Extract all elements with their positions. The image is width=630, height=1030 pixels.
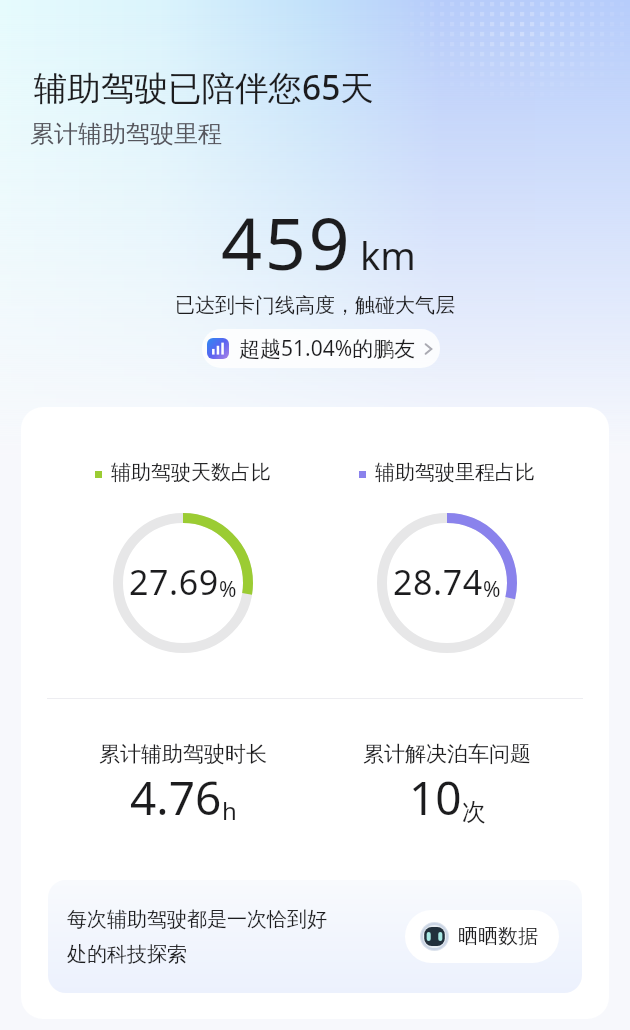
button[interactable]: 晒晒数据	[405, 910, 559, 963]
staticText: 459	[221, 193, 353, 291]
staticText: %	[483, 575, 501, 604]
staticText: 辅助驾驶已陪伴您65天	[34, 64, 374, 110]
button[interactable]: 超越51.04%的鹏友	[202, 329, 440, 368]
staticText: 4.76	[130, 766, 222, 829]
staticText: 每次辅助驾驶都是一次恰到好	[67, 907, 327, 932]
staticText: 累计解决泊车问题	[363, 741, 531, 767]
staticText: 处的科技探索	[67, 942, 187, 967]
staticText: 已达到卡门线高度，触碰大气层	[0, 293, 630, 318]
staticText: h	[222, 794, 237, 827]
staticText: %	[219, 575, 237, 604]
staticText: 超越51.04%的鹏友	[239, 334, 416, 363]
staticText: 累计辅助驾驶里程	[30, 119, 222, 149]
staticText: 10	[409, 766, 462, 829]
staticText: 辅助驾驶里程占比	[375, 460, 535, 485]
staticText: 辅助驾驶天数占比	[111, 460, 271, 485]
staticText: 累计辅助驾驶时长	[99, 741, 267, 767]
staticText: 次	[462, 797, 486, 827]
staticText: km	[360, 229, 416, 281]
staticText: 27.69	[129, 559, 219, 605]
staticText: 28.74	[393, 559, 483, 605]
staticText: 晒晒数据	[458, 924, 538, 949]
